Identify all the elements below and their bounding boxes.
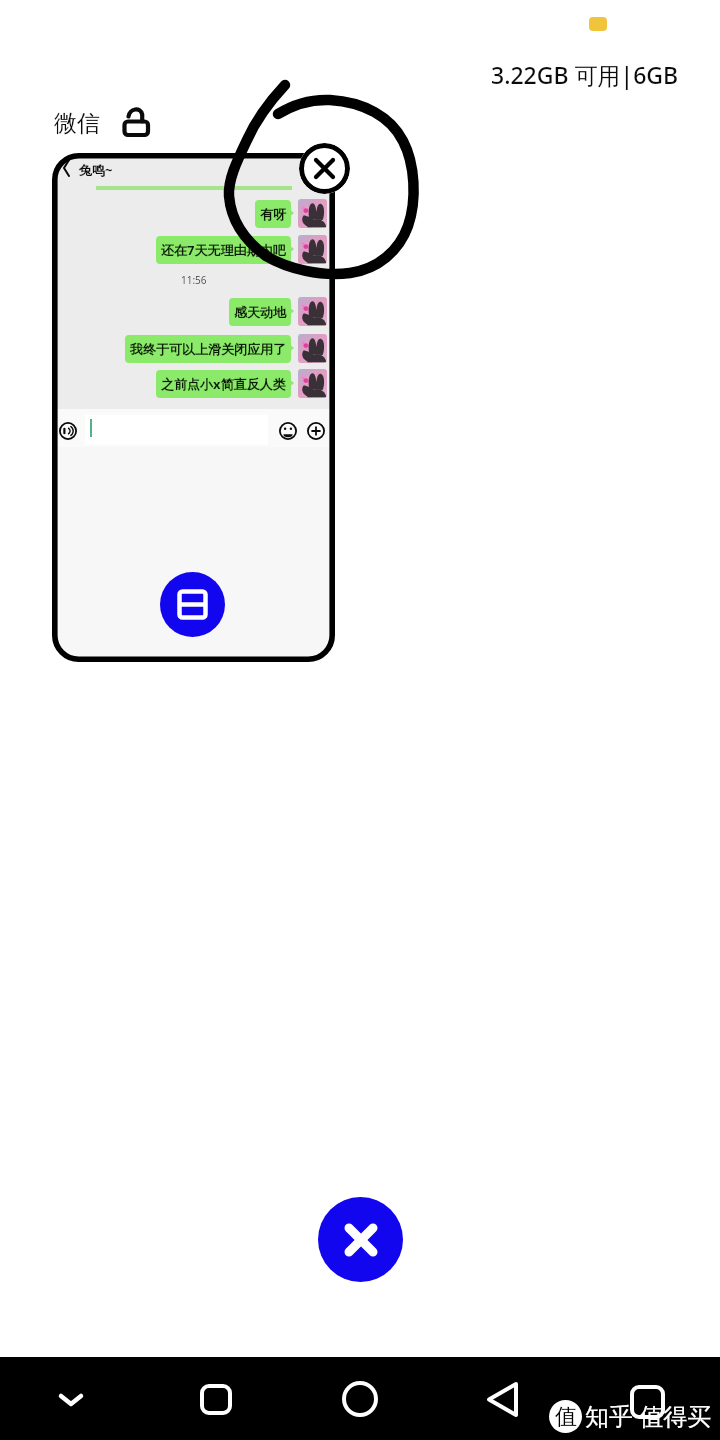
staticText: 之前点小x简直反人类 <box>161 375 286 393</box>
button[interactable]: Close app <box>299 143 350 194</box>
staticText: 还在7天无理由期内吧 <box>161 241 286 259</box>
button[interactable]: Recents <box>186 1374 246 1424</box>
button[interactable]: Unlock app <box>110 93 150 137</box>
staticText: 3.22GB 可用|6GB <box>491 59 679 90</box>
button[interactable]: WeChat recent task <box>52 153 335 662</box>
staticText: 兔鸣~ <box>79 161 113 179</box>
button[interactable]: Back <box>472 1374 532 1424</box>
button[interactable]: Split screen <box>160 572 225 637</box>
staticText: 感天动地 <box>234 304 286 320</box>
staticText: 知乎 值得买 <box>585 1399 712 1432</box>
staticText: 微信 <box>54 109 100 138</box>
staticText: 我终于可以上滑关闭应用了 <box>130 341 286 357</box>
button[interactable]: Clear all apps <box>318 1197 403 1282</box>
button[interactable]: Home <box>330 1374 390 1424</box>
staticText: 值 <box>555 1403 577 1431</box>
staticText: 有呀 <box>260 206 286 222</box>
staticText: 11:56 <box>181 273 207 287</box>
button[interactable]: Hide <box>40 1375 102 1425</box>
